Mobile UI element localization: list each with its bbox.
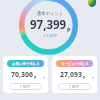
staticText: 97,399 [30, 17, 67, 33]
staticText: ↓1,581P [43, 33, 58, 38]
staticText: お買い物で使える [12, 62, 40, 66]
button[interactable]: 1,581P [9, 83, 42, 90]
staticText: 70,306 [11, 70, 34, 80]
staticText: サービスで使える [61, 62, 89, 66]
staticText: P [83, 75, 86, 80]
button[interactable]: Eco leaf badge [88, 0, 96, 7]
staticText: P [34, 75, 37, 80]
staticText: › [92, 73, 94, 81]
button[interactable]: お買い物で使える [3, 56, 48, 93]
staticText: 1,581P [69, 85, 80, 89]
staticText: 通常ポイント [37, 11, 64, 16]
staticText: › [43, 73, 45, 81]
button[interactable]: 1,581P [58, 83, 91, 90]
staticText: P [67, 26, 71, 33]
staticText: 1,581P [20, 85, 31, 89]
button[interactable]: サービスで使える [52, 56, 97, 93]
staticText: 27,093 [60, 70, 83, 80]
